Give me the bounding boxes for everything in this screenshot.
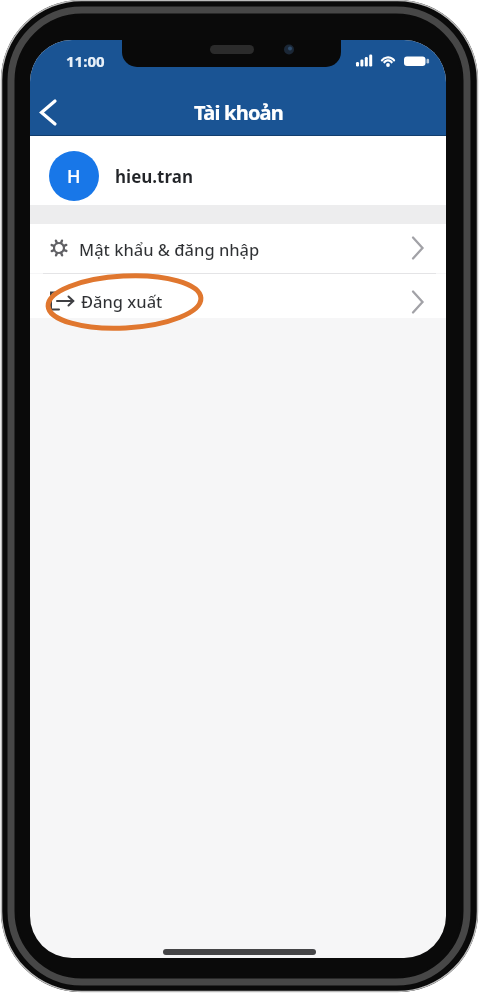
button[interactable] [30, 92, 74, 134]
staticText: Mật khẩu & đăng nhập [79, 238, 260, 260]
staticText: Đăng xuất [81, 290, 163, 312]
button[interactable] [30, 274, 446, 318]
staticText: H [67, 164, 81, 189]
staticText: 11:00 [66, 51, 105, 71]
staticText: Tài khoản [194, 99, 283, 126]
button[interactable] [30, 224, 446, 273]
button[interactable] [30, 136, 446, 205]
staticText: hieu.tran [115, 165, 193, 188]
